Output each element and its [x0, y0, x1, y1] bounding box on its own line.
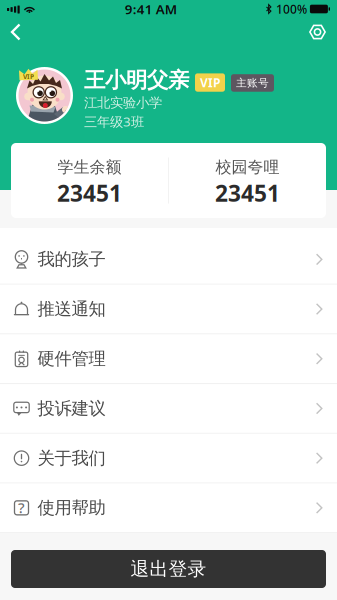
staticText: 使用帮助 [37, 497, 105, 518]
staticText: 23451 [57, 178, 122, 208]
staticText: 退出登录 [130, 557, 206, 580]
staticText: 推送通知 [37, 298, 105, 320]
staticText: 我的孩子 [37, 249, 105, 270]
staticText: 江北实验小学 [84, 95, 162, 111]
staticText: 9:41 AM [125, 0, 177, 18]
staticText: 硬件管理 [37, 348, 105, 369]
staticText: 学生余额 [57, 157, 121, 177]
staticText: 三年级3班 [84, 113, 144, 130]
staticText: 关于我们 [37, 447, 105, 469]
staticText: ? [18, 498, 25, 517]
button[interactable]: 我的孩子 [0, 228, 337, 285]
staticText: 23451 [215, 178, 280, 208]
staticText: VIP [200, 75, 220, 90]
staticText: 100% [276, 1, 307, 17]
button[interactable]: 投诉建议 [0, 384, 337, 434]
button[interactable]: Back [0, 18, 33, 46]
button[interactable]: ? [0, 483, 337, 533]
staticText: 王小明父亲 [84, 67, 189, 93]
button[interactable]: 硬件管理 [0, 334, 337, 384]
staticText: VIP [23, 72, 34, 81]
button[interactable]: 关于我们 [0, 434, 337, 483]
button[interactable]: Settings [298, 19, 337, 45]
staticText: 校园夸哩 [215, 157, 279, 177]
button[interactable]: 推送通知 [0, 285, 337, 334]
button[interactable]: 退出登录 [11, 550, 326, 588]
staticText: 主账号 [236, 76, 269, 89]
staticText: 投诉建议 [37, 398, 105, 419]
